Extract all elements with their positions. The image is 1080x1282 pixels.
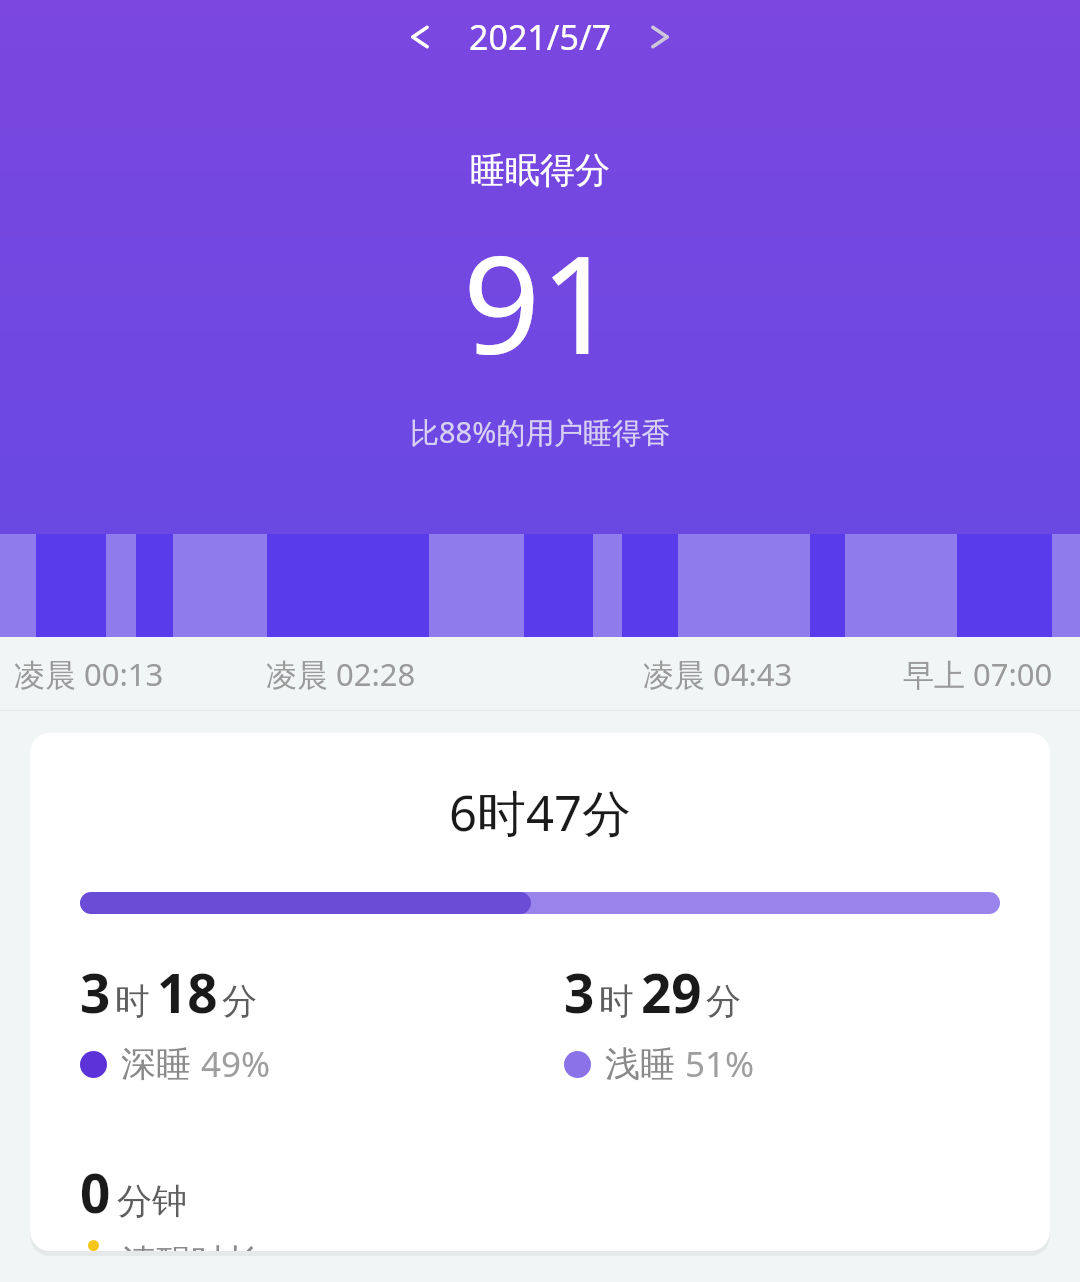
staticText: 凌晨 04:43 — [643, 653, 793, 695]
staticText: 浅睡 — [605, 1042, 675, 1086]
staticText: 6时47分 — [449, 779, 632, 846]
staticText: 早上 07:00 — [903, 653, 1053, 695]
staticText: 91 — [463, 210, 618, 394]
staticText: 时 — [599, 979, 634, 1023]
staticText: 3 — [564, 956, 595, 1028]
staticText: 睡眠得分 — [470, 148, 610, 192]
button[interactable]: 3 — [80, 956, 540, 1088]
staticText: 比88%的用户睡得香 — [410, 412, 671, 452]
staticText: 凌晨 02:28 — [266, 653, 416, 695]
button[interactable]: Next day — [631, 8, 689, 66]
staticText: 凌晨 00:13 — [14, 653, 164, 695]
staticText: 分 — [222, 979, 257, 1023]
button[interactable]: 6时47分 — [30, 733, 1050, 1251]
button[interactable]: 0 — [80, 1156, 1050, 1251]
staticText: 18 — [157, 956, 218, 1028]
staticText: 3 — [80, 956, 111, 1028]
staticText: 分 — [706, 979, 741, 1023]
staticText: 29 — [641, 956, 702, 1028]
staticText: 分钟 — [117, 1179, 187, 1223]
staticText: 51% — [685, 1040, 755, 1088]
button[interactable]: Previous day — [391, 8, 449, 66]
staticText: 清醒时长 — [121, 1240, 261, 1251]
staticText: 49% — [201, 1040, 271, 1088]
button[interactable]: 3 — [564, 956, 1050, 1088]
staticText: 深睡 — [121, 1042, 191, 1086]
staticText: 2021/5/7 — [469, 14, 611, 60]
staticText: 0 — [80, 1156, 111, 1228]
staticText: 时 — [115, 979, 150, 1023]
